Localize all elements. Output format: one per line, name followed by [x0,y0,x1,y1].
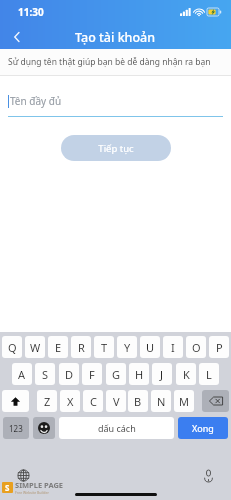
button[interactable]: E [48,336,68,358]
staticText: W [30,340,41,355]
staticText: K [183,367,190,382]
staticText: SIMPLE PAGE [15,480,64,490]
button[interactable]: J [152,363,172,385]
button[interactable]: B [128,390,148,412]
staticText: E [55,340,62,355]
button[interactable]: G [106,363,126,385]
button[interactable]: L [199,363,219,385]
staticText: R [78,340,85,355]
button[interactable]: Tên đầy đủ [8,94,223,116]
button[interactable]: D [59,363,79,385]
button[interactable]: Y [117,336,137,358]
button[interactable]: W [25,336,45,358]
staticText: N [157,394,166,409]
staticText: dấu cách [98,422,136,434]
button[interactable]: Change language [12,464,34,486]
staticText: Free Website Builder [15,490,49,495]
button[interactable]: Xong [178,417,228,439]
staticText: 123 [9,423,23,434]
button[interactable]: U [140,336,160,358]
staticText: Q [8,340,17,355]
button[interactable]: Voice input [197,464,219,486]
staticText: S [5,482,10,493]
button[interactable]: C [83,390,103,412]
button[interactable]: A [12,363,32,385]
button[interactable]: P [209,336,229,358]
staticText: 11:30 [18,5,44,19]
staticText: T [101,340,108,355]
button[interactable]: K [176,363,196,385]
staticText: Z [44,394,51,409]
staticText: Sử dụng tên thật giúp bạn bè dễ dàng nhậ… [8,56,211,68]
staticText: O [192,340,201,355]
button[interactable]: I [163,336,183,358]
staticText: J [160,367,164,382]
button[interactable]: Tiếp tục [61,135,171,161]
button[interactable]: Backspace [202,390,229,412]
staticText: Tên đầy đủ [10,94,62,108]
staticText: B [134,394,142,409]
staticText: V [113,394,120,409]
button[interactable]: M [174,390,194,412]
button[interactable]: 123 [3,417,29,439]
button[interactable]: Z [37,390,57,412]
staticText: P [216,340,223,355]
staticText: Y [124,340,131,355]
button[interactable]: S [35,363,55,385]
button[interactable]: H [129,363,149,385]
staticText: X [67,394,74,409]
staticText: Tiếp tục [98,142,134,155]
button[interactable]: Q [2,336,22,358]
staticText: D [65,367,74,382]
button[interactable]: dấu cách [59,417,174,439]
staticText: Tạo tài khoản [75,29,156,46]
button[interactable]: V [106,390,126,412]
button[interactable]: X [60,390,80,412]
button[interactable]: Shift [2,390,29,412]
button[interactable]: N [151,390,171,412]
staticText: M [179,394,189,409]
button[interactable]: T [94,336,114,358]
staticText: G [112,367,121,382]
button[interactable]: Emoji [33,417,55,439]
button[interactable]: O [186,336,206,358]
staticText: L [206,367,212,382]
staticText: A [18,367,26,382]
staticText: C [90,394,97,409]
button[interactable]: Back [0,20,34,54]
button[interactable]: R [71,336,91,358]
button[interactable]: F [82,363,102,385]
staticText: U [146,340,155,355]
staticText: Xong [192,422,214,434]
staticText: S [42,367,49,382]
staticText: H [135,367,144,382]
staticText: I [171,340,175,355]
staticText: F [89,367,95,382]
